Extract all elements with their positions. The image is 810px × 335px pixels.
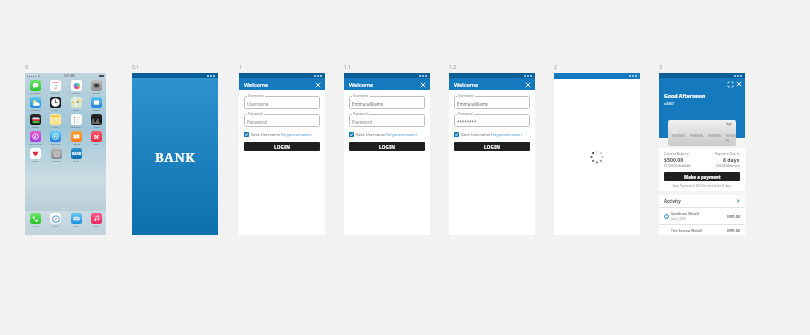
staticText: Username (247, 101, 269, 107)
button[interactable]: Messages (28, 80, 42, 95)
staticText: $991.00 (727, 214, 740, 219)
staticText: Weather (31, 109, 40, 112)
staticText: Password (352, 119, 372, 125)
button[interactable]: Music (89, 213, 103, 228)
staticText: Health (32, 160, 39, 163)
staticText: Emma.williams (457, 101, 488, 107)
button[interactable]: N (89, 131, 103, 146)
staticText: Password (248, 112, 263, 116)
staticText: Messages (30, 92, 41, 95)
staticText: ******** (457, 119, 477, 125)
button[interactable]: Activity (664, 198, 740, 204)
staticText: 0 (25, 64, 28, 71)
staticText: ▼ (38, 75, 40, 78)
staticText: 8 days (723, 156, 740, 163)
button[interactable]: Wallet (28, 114, 42, 129)
staticText: Stocks (93, 126, 100, 129)
button[interactable]: Close (314, 81, 321, 88)
staticText: Wallet (32, 126, 39, 129)
staticText: iBooks (73, 143, 80, 146)
staticText: Maps (73, 109, 79, 112)
button[interactable]: Save Username (244, 132, 320, 137)
staticText: $1,500.00 Available (664, 164, 692, 168)
staticText: Sandtrace (Retail) (671, 211, 700, 216)
button[interactable]: Settings (49, 148, 63, 163)
button[interactable]: Close (736, 81, 742, 87)
staticText: Reminders (70, 126, 82, 129)
staticText: Password (458, 112, 473, 116)
staticText: $500.00 (664, 156, 684, 163)
button[interactable]: Camera (89, 80, 103, 95)
button[interactable]: Weather (28, 97, 42, 112)
button[interactable]: Forgot username / password (386, 132, 425, 137)
button[interactable]: Phone (28, 213, 42, 228)
button[interactable]: Reminders (69, 114, 83, 129)
button[interactable]: Password (349, 114, 425, 127)
button[interactable]: Close (419, 81, 426, 88)
button[interactable]: Stocks (89, 114, 103, 129)
staticText: 2 (54, 83, 58, 91)
staticText: Password (353, 112, 368, 116)
staticText: Save Username (356, 132, 386, 137)
button[interactable]: ! (664, 211, 740, 221)
staticText: 1.1 (344, 64, 352, 71)
button[interactable]: iTunes Store (28, 131, 42, 146)
staticText: July 2, 2020 (671, 217, 686, 221)
staticText: LOGIN (274, 144, 291, 150)
staticText: 2 (554, 64, 557, 71)
staticText: $25.00 Minimum (716, 164, 740, 168)
staticText: BANK (73, 160, 79, 163)
button[interactable]: Tree Escrow (Retail) (664, 228, 740, 232)
button[interactable]: Clock (48, 97, 62, 112)
button[interactable]: Forgot username / password (491, 132, 530, 137)
button[interactable]: LOGIN (349, 142, 425, 151)
staticText: Good Afternoon (664, 92, 706, 99)
staticText: Clock (52, 109, 58, 112)
staticText: News (93, 143, 99, 146)
button[interactable]: Close (524, 81, 531, 88)
staticText: %%%% (726, 133, 736, 143)
button[interactable]: Maps (69, 97, 83, 112)
button[interactable]: Emma.williams (349, 96, 425, 109)
staticText: 3 (659, 64, 662, 71)
button[interactable]: Username (244, 96, 320, 109)
button[interactable]: BANK (69, 148, 83, 163)
button[interactable]: Health (28, 148, 42, 163)
staticText: ! (666, 215, 667, 219)
staticText: logo (726, 122, 733, 126)
staticText: $991.00 (727, 228, 740, 232)
button[interactable]: Safari (48, 213, 62, 228)
staticText: Username (353, 94, 369, 98)
button[interactable]: logo (668, 120, 736, 146)
button[interactable]: Notes (48, 114, 62, 129)
button[interactable]: Scan (727, 81, 733, 87)
button[interactable]: Forgot username / password (281, 132, 320, 137)
staticText: Welcome (349, 81, 374, 88)
button[interactable]: Save Username (349, 132, 425, 137)
button[interactable]: LOGIN (244, 142, 320, 151)
staticText: Password (247, 119, 267, 125)
staticText: Mail (74, 225, 79, 228)
staticText: Welcome (454, 81, 479, 88)
button[interactable]: LOGIN (454, 142, 530, 151)
button[interactable]: ******** (454, 114, 530, 127)
button[interactable]: iBooks (69, 131, 83, 146)
staticText: 1.2 (449, 64, 457, 71)
button[interactable]: Photos (69, 80, 83, 95)
staticText: Current Balance (664, 151, 689, 155)
staticText: Settings (52, 160, 61, 163)
staticText: Save Username (461, 132, 491, 137)
button[interactable]: App Store (48, 131, 62, 146)
staticText: LOGIN (484, 144, 501, 150)
button[interactable]: Emma.williams (454, 96, 530, 109)
staticText: iTunes Store (29, 143, 42, 146)
staticText: Welcome (244, 81, 269, 88)
button[interactable]: Videos (89, 97, 103, 112)
button[interactable]: Mail (69, 213, 83, 228)
staticText: Tree Escrow (Retail) (671, 228, 703, 232)
button[interactable]: TUESDAY (48, 80, 62, 95)
staticText: Save Username (251, 132, 281, 137)
button[interactable]: Save Username (454, 132, 530, 137)
button[interactable]: Password (244, 114, 320, 127)
button[interactable]: Make a payment (664, 172, 740, 181)
